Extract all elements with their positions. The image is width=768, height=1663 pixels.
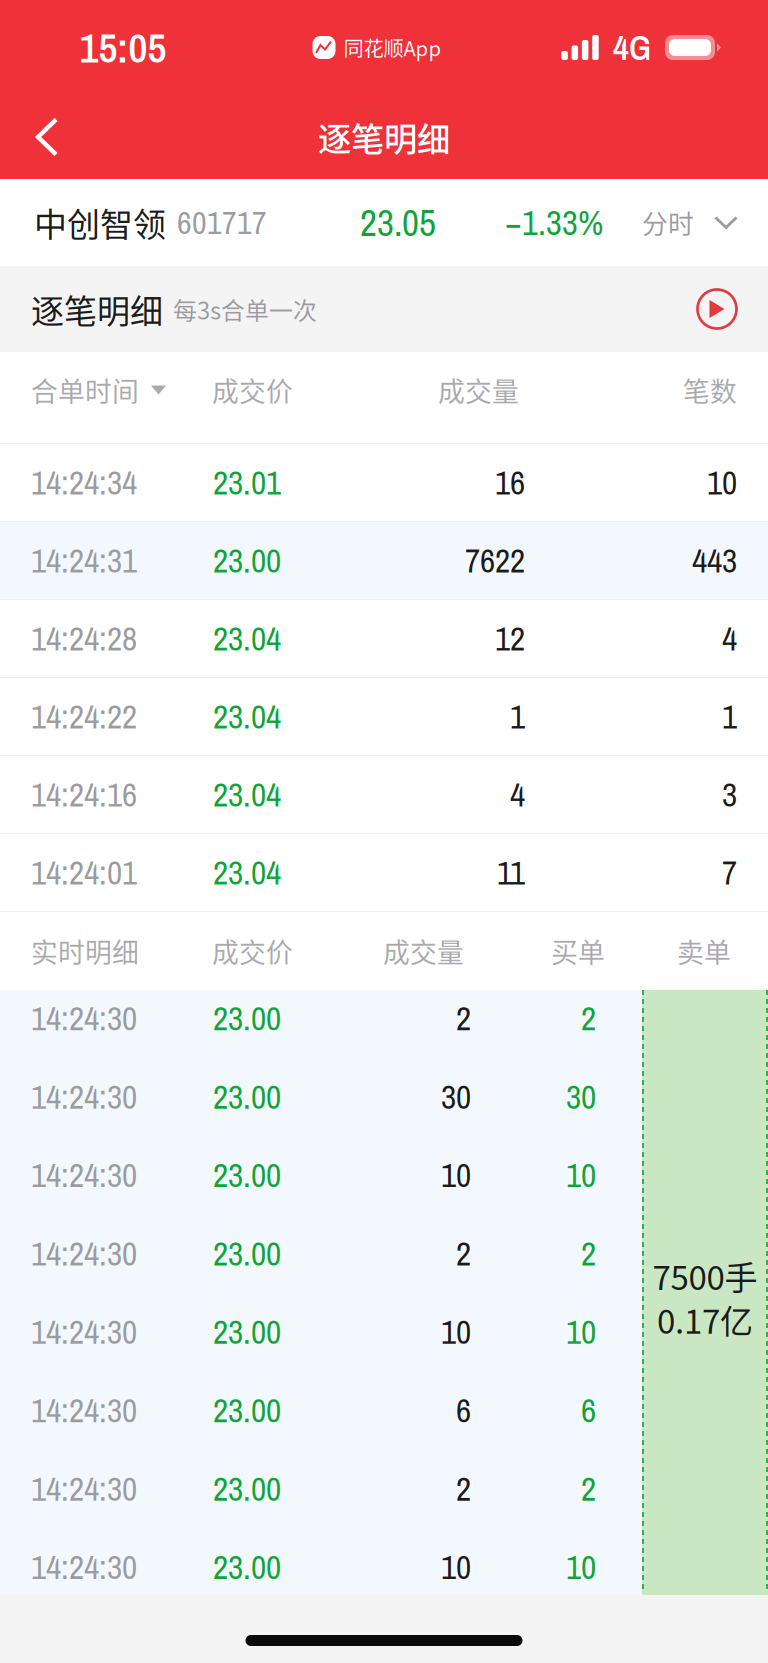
staticText: 实时明细	[31, 932, 139, 970]
staticText: 买单	[551, 932, 605, 970]
staticText: 成交量	[383, 932, 464, 970]
staticText: 12	[495, 616, 525, 661]
staticText: 30	[441, 1074, 471, 1119]
staticText: 4	[722, 616, 737, 661]
staticText: 2	[581, 1466, 596, 1511]
staticText: 中创智领	[34, 199, 166, 246]
staticText: 23.00	[213, 1466, 281, 1511]
staticText: 10	[441, 1153, 471, 1197]
staticText: 14:24:30	[31, 1153, 137, 1197]
staticText: 10	[441, 1545, 471, 1589]
staticText: 成交价	[212, 371, 293, 409]
staticText: 11	[497, 850, 525, 895]
staticText: 逐笔明细	[318, 113, 450, 161]
staticText: 分时	[642, 204, 694, 241]
staticText: 601717	[177, 201, 267, 244]
staticText: 笔数	[683, 371, 737, 409]
staticText: 成交量	[438, 371, 519, 409]
staticText: 14:24:30	[31, 1545, 137, 1589]
staticText: 23.00	[213, 1231, 281, 1276]
staticText: 7500手	[652, 1252, 757, 1299]
staticText: 14:24:22	[31, 694, 137, 739]
staticText: 14:24:16	[31, 772, 137, 817]
staticText: 7622	[465, 538, 525, 583]
staticText: 23.04	[213, 850, 281, 895]
staticText: 2	[456, 1231, 471, 1276]
staticText: 23.04	[213, 616, 281, 661]
staticText: 10	[566, 1153, 596, 1197]
staticText: 23.00	[213, 1153, 281, 1197]
staticText: 14:24:30	[31, 1309, 137, 1354]
staticText: 23.01	[213, 460, 281, 505]
staticText: 卖单	[677, 932, 731, 970]
staticText: −1.33%	[505, 199, 603, 246]
staticText: 23.05	[360, 197, 436, 247]
staticText: 15:05	[79, 20, 166, 75]
staticText: 成交价	[212, 932, 293, 970]
staticText: 16	[495, 460, 525, 505]
staticText: 10	[441, 1309, 471, 1354]
staticText: 0.17亿	[657, 1295, 753, 1343]
staticText: 合单时间	[31, 371, 139, 409]
staticText: 每3s合单一次	[163, 292, 317, 326]
staticText: 7	[722, 850, 737, 895]
staticText: 23.04	[213, 772, 281, 817]
staticText: 2	[581, 1231, 596, 1276]
staticText: 14:24:28	[31, 616, 137, 661]
staticText: 23.00	[213, 1388, 281, 1433]
staticText: 10	[566, 1309, 596, 1354]
staticText: 14:24:30	[31, 996, 137, 1041]
staticText: 3	[722, 772, 737, 817]
staticText: 同花顺App	[343, 33, 441, 62]
staticText: 14:24:30	[31, 1388, 137, 1433]
staticText: 14:24:31	[31, 538, 137, 583]
staticText: 4G	[613, 24, 651, 71]
staticText: 2	[456, 996, 471, 1041]
staticText: 23.00	[213, 1309, 281, 1354]
staticText: 23.00	[213, 538, 281, 583]
staticText: 1	[510, 694, 525, 739]
staticText: 443	[692, 538, 737, 583]
staticText: 10	[707, 460, 737, 505]
staticText: 23.04	[213, 694, 281, 739]
staticText: 6	[456, 1388, 471, 1433]
staticText: 10	[566, 1545, 596, 1589]
button[interactable]: Play	[689, 281, 745, 337]
staticText: 14:24:34	[31, 460, 137, 505]
button[interactable]: Back	[0, 95, 94, 179]
staticText: 23.00	[213, 1545, 281, 1589]
staticText: 23.00	[213, 1074, 281, 1119]
button[interactable]: 分时	[642, 204, 738, 241]
staticText: 23.00	[213, 996, 281, 1041]
staticText: 30	[566, 1074, 596, 1119]
staticText: 2	[456, 1466, 471, 1511]
staticText: 4	[510, 772, 525, 817]
staticText: 14:24:30	[31, 1466, 137, 1511]
staticText: 1	[722, 694, 737, 739]
staticText: 14:24:30	[31, 1231, 137, 1276]
staticText: 14:24:30	[31, 1074, 137, 1119]
staticText: 14:24:01	[31, 850, 137, 895]
staticText: 6	[581, 1388, 596, 1433]
staticText: 2	[581, 996, 596, 1041]
staticText: 逐笔明细	[31, 285, 163, 333]
